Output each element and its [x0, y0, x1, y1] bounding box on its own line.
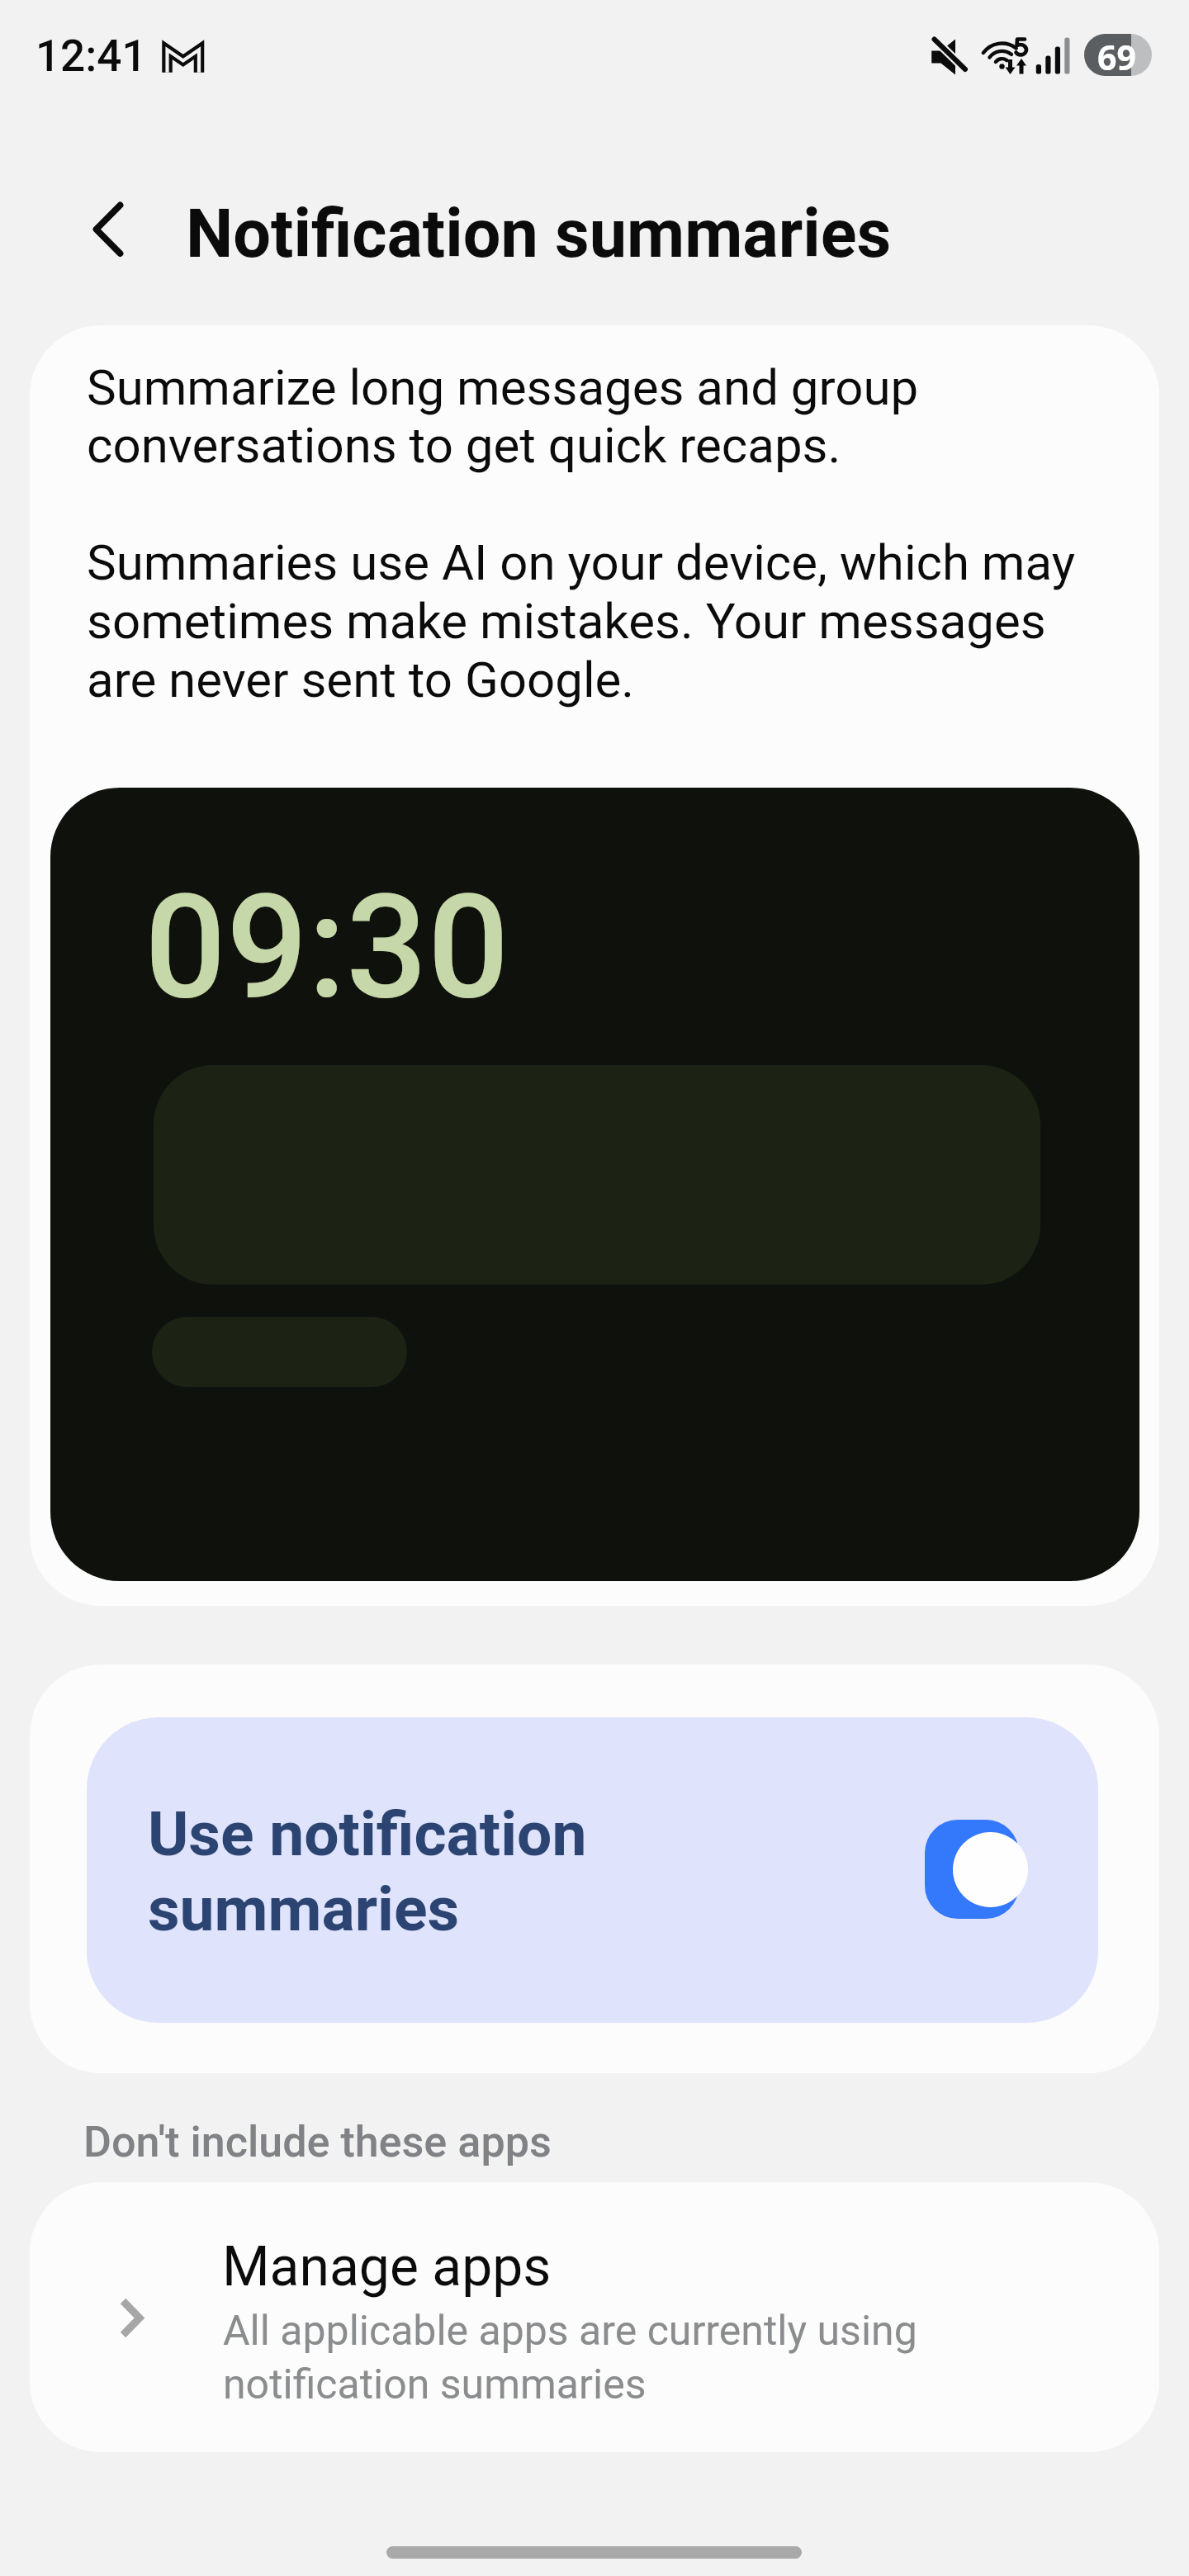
staticText: Don't include these apps — [83, 2117, 552, 2167]
staticText: Summarize long messages and group conver… — [87, 358, 1111, 709]
button[interactable]: Use notification summaries toggle, on — [908, 1803, 1040, 1935]
staticText: 69 — [1097, 34, 1136, 76]
staticText: Use notification summaries — [148, 1797, 775, 1945]
staticText: Manage apps — [222, 2235, 552, 2299]
button[interactable]: Back — [76, 192, 145, 268]
button[interactable]: Use notification summaries — [87, 1717, 1098, 2023]
button[interactable]: Manage apps — [30, 2182, 1159, 2452]
staticText: All applicable apps are currently using … — [223, 2307, 966, 2409]
staticText: 12:41 — [36, 31, 147, 82]
staticText: 09:30 — [144, 864, 509, 1032]
staticText: Notification summaries — [186, 195, 892, 273]
